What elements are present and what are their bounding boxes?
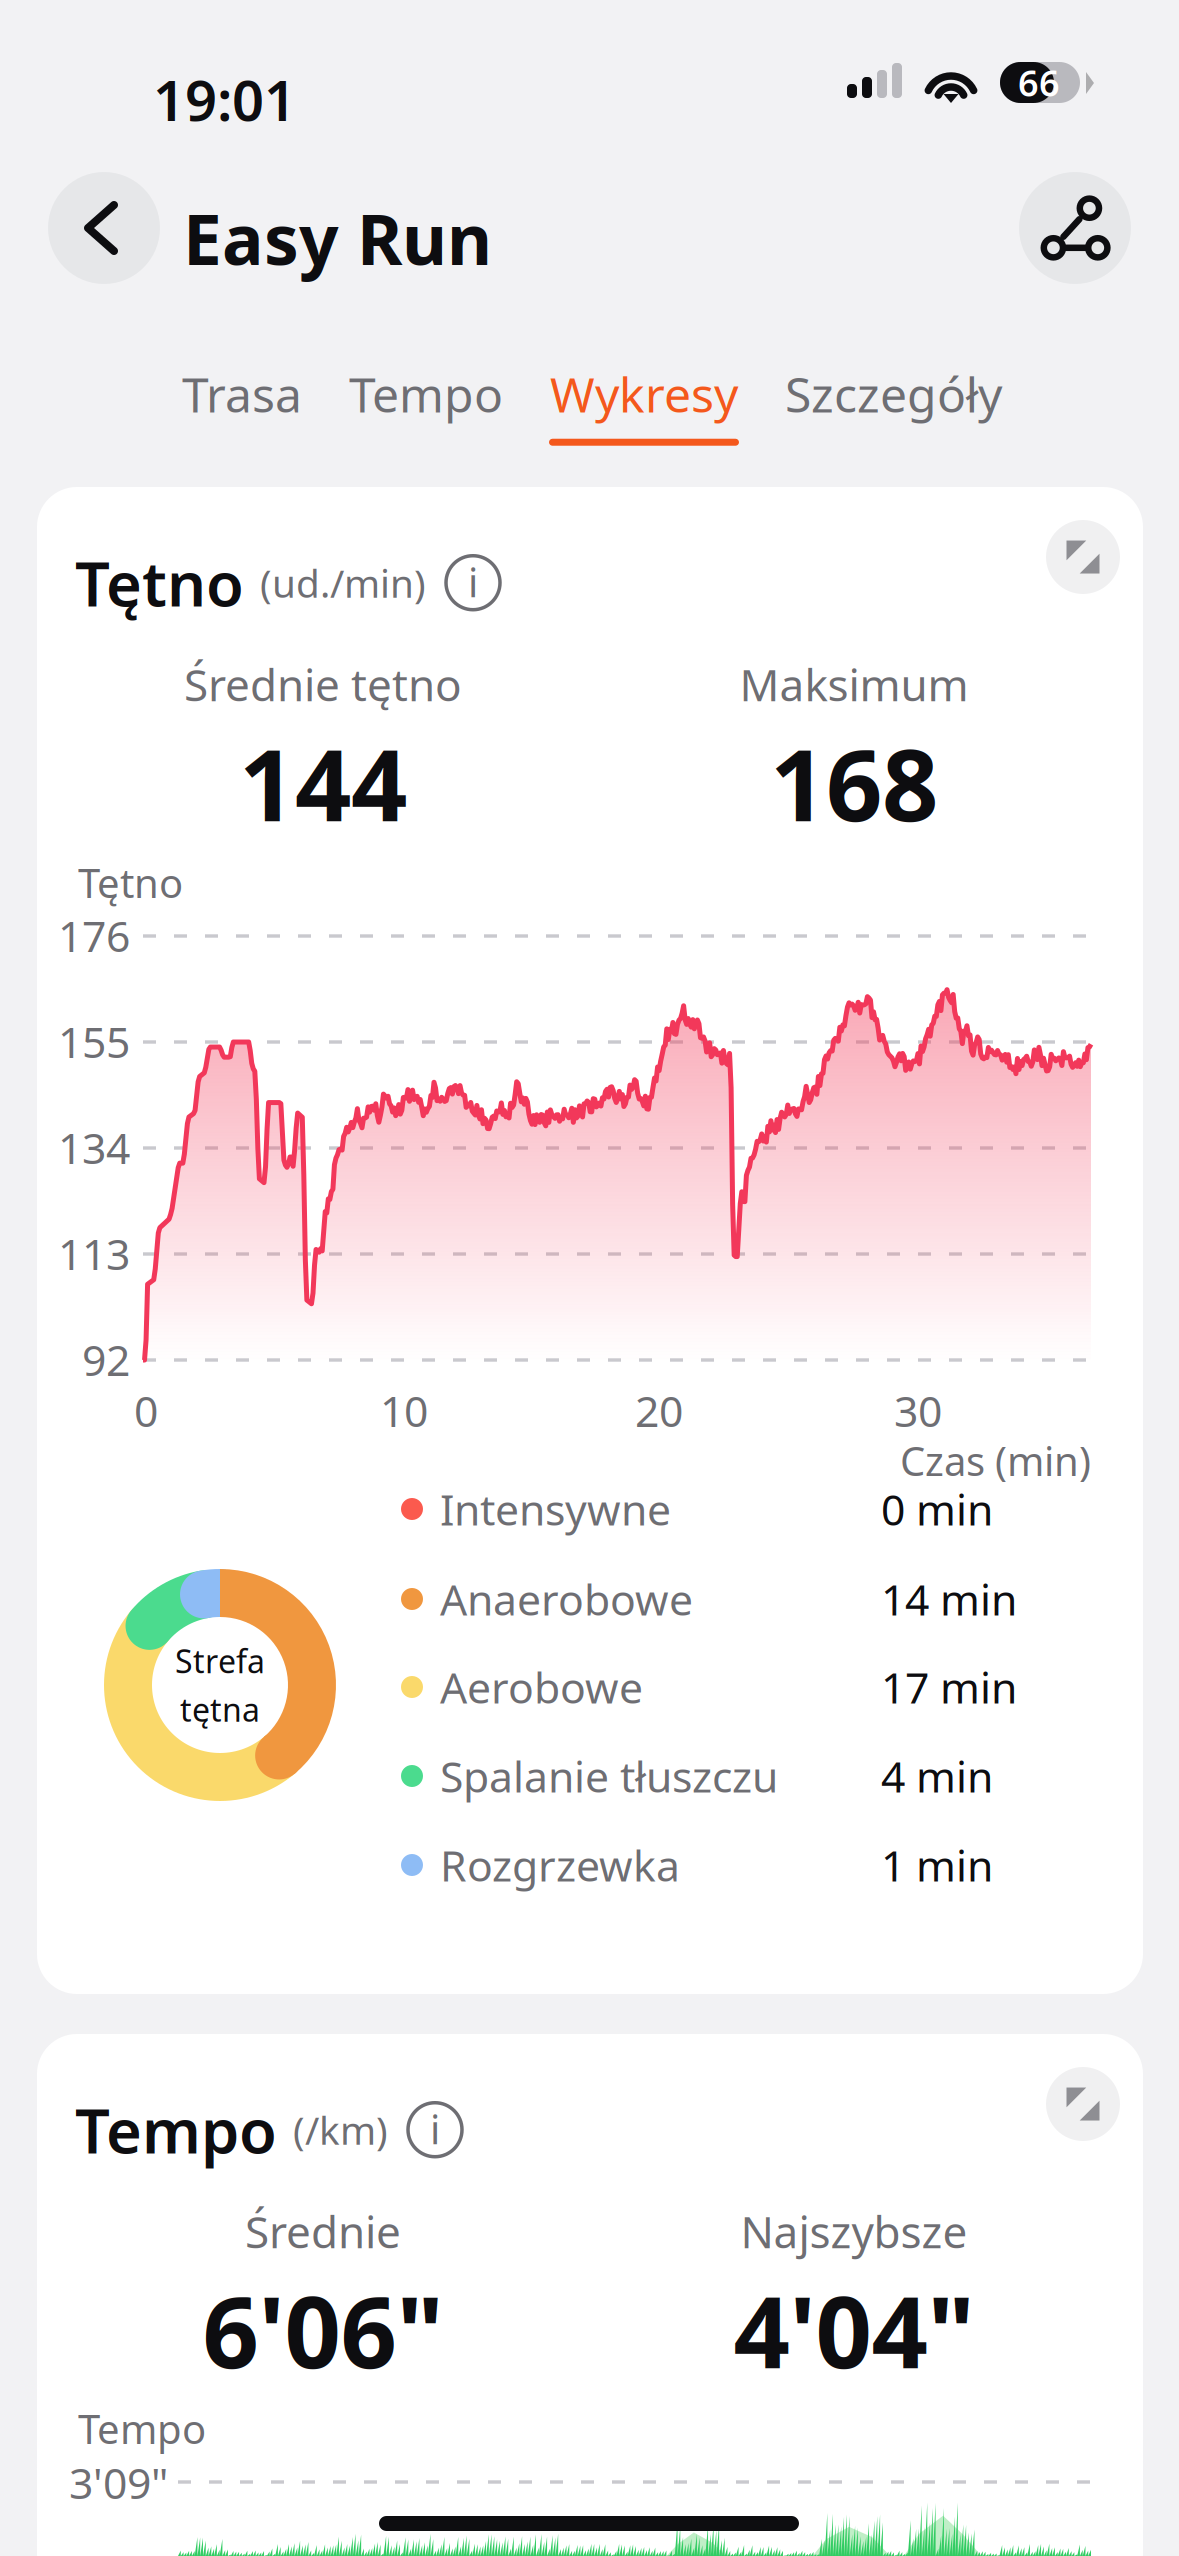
staticText: (ud./min) [260,557,426,608]
staticText: 144 [239,717,407,848]
staticText: Trasa [182,362,302,426]
button[interactable]: Share [1019,172,1131,284]
staticText: 66 [1018,59,1060,106]
staticText: Tempo [349,362,503,426]
button[interactable]: Tempo [349,352,503,452]
button[interactable]: Back [48,172,160,284]
button[interactable]: Expand [1046,2067,1120,2141]
staticText: 176 [58,907,130,964]
staticText: Aerobowe [440,1659,643,1715]
staticText: Czas (min) [900,1434,1091,1487]
staticText: 3'09" [69,2454,168,2511]
staticText: Strefa [175,1639,265,1682]
staticText: 4 min [881,1748,993,1804]
button[interactable]: Expand [1046,520,1120,594]
button[interactable]: Info [388,2103,462,2157]
staticText: 0 [134,1382,158,1439]
staticText: 92 [82,1331,130,1388]
staticText: Średnie tętno [184,655,462,713]
button[interactable]: Wykresy [549,352,739,452]
staticText: i [430,2102,440,2155]
staticText: Średnie [245,2202,401,2260]
staticText: Szczegóły [785,362,1002,426]
staticText: 134 [58,1119,130,1176]
staticText: 0 min [881,1481,993,1537]
staticText: Tętno [75,542,244,623]
staticText: Intensywne [440,1481,671,1537]
button[interactable]: Szczegóły [785,352,1002,452]
staticText: Anaerobowe [440,1571,693,1627]
staticText: 14 min [881,1571,1017,1627]
staticText: 17 min [881,1659,1017,1715]
staticText: Easy Run [183,192,492,284]
staticText: Spalanie tłuszczu [440,1748,778,1804]
staticText: 6'06" [202,2264,443,2395]
staticText: Tempo [75,2089,277,2170]
staticText: (/km) [293,2104,388,2155]
staticText: 19:01 [153,62,296,136]
staticText: Tętno [78,856,183,909]
button[interactable]: Trasa [182,352,302,452]
staticText: 30 [894,1382,942,1439]
staticText: 168 [770,717,938,848]
staticText: i [468,555,478,608]
staticText: 4'04" [733,2264,974,2395]
staticText: 1 min [881,1837,993,1893]
staticText: Rozgrzewka [440,1837,680,1893]
staticText: Maksimum [739,655,968,713]
button[interactable]: Info [426,556,500,610]
staticText: tętna [180,1688,260,1730]
staticText: Wykresy [550,362,738,426]
staticText: Najszybsze [740,2202,967,2260]
staticText: 113 [58,1225,130,1282]
staticText: 155 [58,1013,130,1070]
staticText: 10 [380,1382,428,1439]
staticText: Tempo [78,2402,206,2455]
staticText: 20 [635,1382,683,1439]
